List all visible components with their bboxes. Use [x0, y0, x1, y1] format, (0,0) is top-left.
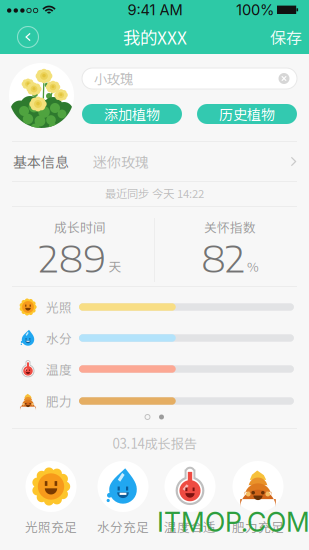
staticText: 小玫瑰	[94, 69, 133, 88]
staticText: 289	[38, 235, 106, 280]
staticText: 肥力	[46, 392, 72, 410]
staticText: 天	[108, 257, 121, 275]
staticText: 最近同步 今天 14:22	[105, 185, 204, 201]
staticText: 我的XXX	[123, 24, 187, 50]
staticText: 关怀指数	[204, 218, 256, 236]
staticText: 水分	[46, 329, 72, 347]
staticText: ITMOP.COM	[157, 506, 309, 538]
staticText: 光照	[46, 298, 72, 316]
staticText: 温度合适	[164, 517, 216, 536]
staticText: 82	[201, 235, 245, 280]
staticText: 历史植物	[219, 104, 275, 124]
staticText: %	[247, 257, 259, 275]
button[interactable]: 添加植物	[82, 104, 182, 124]
button[interactable]: 水分充足	[88, 461, 158, 533]
button[interactable]: Back	[8, 24, 48, 50]
button[interactable]: 肥力充足	[223, 461, 293, 533]
staticText: 添加植物	[104, 104, 160, 124]
staticText: 成长时间	[54, 218, 106, 236]
button[interactable]: 保存	[258, 26, 302, 48]
button[interactable]: Clear text	[275, 69, 293, 87]
button[interactable]: 历史植物	[197, 104, 297, 124]
staticText: 温度	[46, 360, 72, 378]
staticText: 迷你玫瑰	[93, 151, 149, 172]
staticText: 光照充足	[25, 517, 77, 536]
staticText: 基本信息	[13, 151, 69, 172]
button[interactable]: 基本信息	[0, 142, 309, 181]
staticText: 保存	[270, 25, 302, 49]
staticText: 肥力充足	[232, 517, 284, 536]
staticText: 水分充足	[97, 517, 149, 536]
staticText: 9:41 AM	[127, 1, 182, 19]
staticText: 03.14成长报告	[112, 433, 196, 453]
button[interactable]: 光照充足	[16, 461, 86, 533]
staticText: 100%	[236, 1, 274, 19]
button[interactable]: 温度合适	[155, 461, 225, 533]
